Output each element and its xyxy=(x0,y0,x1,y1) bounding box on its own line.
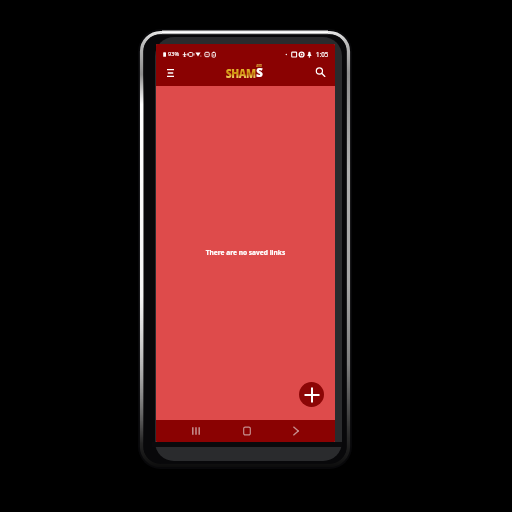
staticText: There are no saved links xyxy=(156,248,335,257)
button[interactable]: Recents xyxy=(185,420,207,442)
button[interactable]: Home xyxy=(236,420,258,442)
staticText: ARD xyxy=(256,64,262,68)
staticText: 93% xyxy=(168,50,180,58)
button[interactable]: Add link xyxy=(299,382,324,407)
staticText: SHAM xyxy=(226,65,256,81)
button[interactable]: Search xyxy=(309,61,330,82)
button[interactable]: Menu xyxy=(160,62,181,83)
staticText: 1:05 xyxy=(316,50,329,58)
button[interactable]: Back xyxy=(285,420,307,442)
staticText: S xyxy=(256,63,263,81)
